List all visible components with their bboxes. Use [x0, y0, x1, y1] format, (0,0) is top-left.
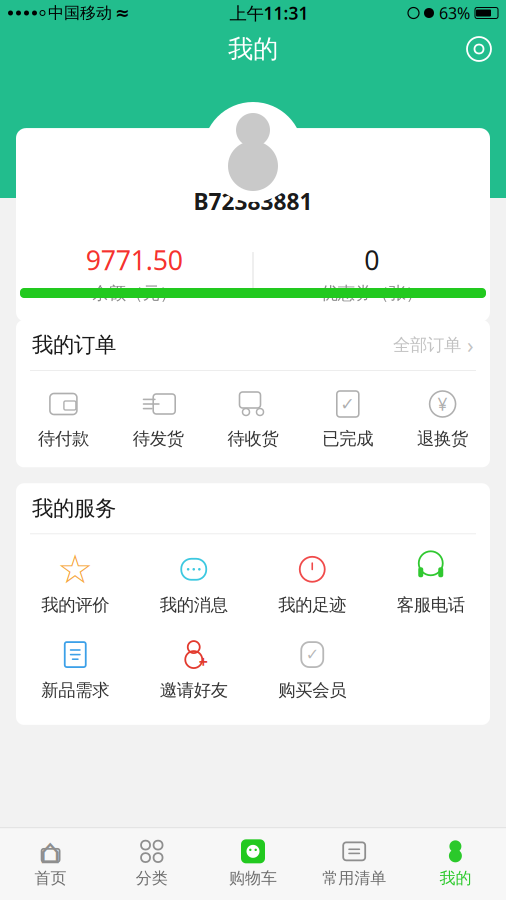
button[interactable]: 我的足迹 — [253, 552, 371, 618]
button[interactable]: ☆ — [16, 552, 134, 618]
staticText: 余额（元） — [92, 283, 177, 304]
button[interactable]: 待收货 — [206, 385, 300, 453]
staticText: 新品需求 — [41, 680, 109, 701]
staticText: 中国移动 — [48, 3, 112, 23]
staticText: 全部订单 — [393, 334, 461, 356]
button[interactable]: 购物车 — [202, 832, 304, 894]
staticText: ≈ — [115, 3, 130, 23]
staticText: 待收货 — [227, 428, 278, 449]
staticText: B72383881 — [193, 186, 312, 216]
staticText: 购买会员 — [278, 680, 346, 701]
button[interactable]: 常用清单 — [304, 832, 405, 894]
staticText: 上午11:31 — [229, 1, 308, 24]
staticText: ✓ — [306, 645, 319, 664]
staticText: 待发货 — [133, 428, 184, 449]
staticText: 优惠券（张） — [321, 283, 423, 304]
staticText: 客服电话 — [397, 594, 465, 616]
staticText: ¥ — [438, 392, 448, 415]
button[interactable]: 新品需求 — [16, 638, 134, 703]
staticText: 63% — [439, 2, 470, 24]
button[interactable]: ✓ — [253, 638, 371, 703]
staticText: › — [461, 331, 474, 359]
staticText: 我的评价 — [41, 594, 109, 616]
staticText: 我的订单 — [32, 332, 116, 358]
staticText: ✓ — [340, 394, 355, 414]
staticText: ⌂ — [40, 832, 62, 871]
staticText: 待付款 — [38, 428, 89, 449]
staticText: 我的 — [439, 868, 471, 888]
staticText: 我的足迹 — [278, 594, 346, 616]
button[interactable]: 我的 — [405, 832, 506, 894]
staticText: 首页 — [35, 868, 67, 888]
button[interactable]: + — [134, 638, 253, 703]
staticText: 购物车 — [229, 868, 277, 888]
staticText: 我的服务 — [32, 495, 116, 521]
button[interactable]: ¥ — [395, 385, 490, 453]
staticText: 0 — [364, 242, 379, 278]
staticText: + — [199, 651, 208, 672]
button[interactable]: ⌂ — [0, 832, 101, 894]
button[interactable]: 待发货 — [111, 385, 206, 453]
staticText: 常用清单 — [322, 868, 386, 888]
button[interactable]: 我的订单 — [16, 320, 490, 370]
staticText: 我的消息 — [160, 594, 228, 616]
staticText: 9771.50 — [86, 242, 183, 278]
button[interactable]: 客服电话 — [371, 552, 490, 618]
button[interactable]: ✓ — [300, 385, 395, 453]
staticText: 退换货 — [417, 428, 468, 449]
staticText: 我的 — [228, 33, 278, 64]
button[interactable]: 我的消息 — [134, 552, 253, 618]
staticText: 已完成 — [322, 428, 373, 449]
button[interactable]: 待付款 — [16, 385, 111, 453]
button[interactable]: Settings — [464, 34, 506, 64]
staticText: 分类 — [136, 868, 168, 888]
staticText: ☆ — [57, 547, 93, 592]
staticText: 邀请好友 — [160, 680, 228, 701]
button[interactable]: 分类 — [101, 832, 202, 894]
